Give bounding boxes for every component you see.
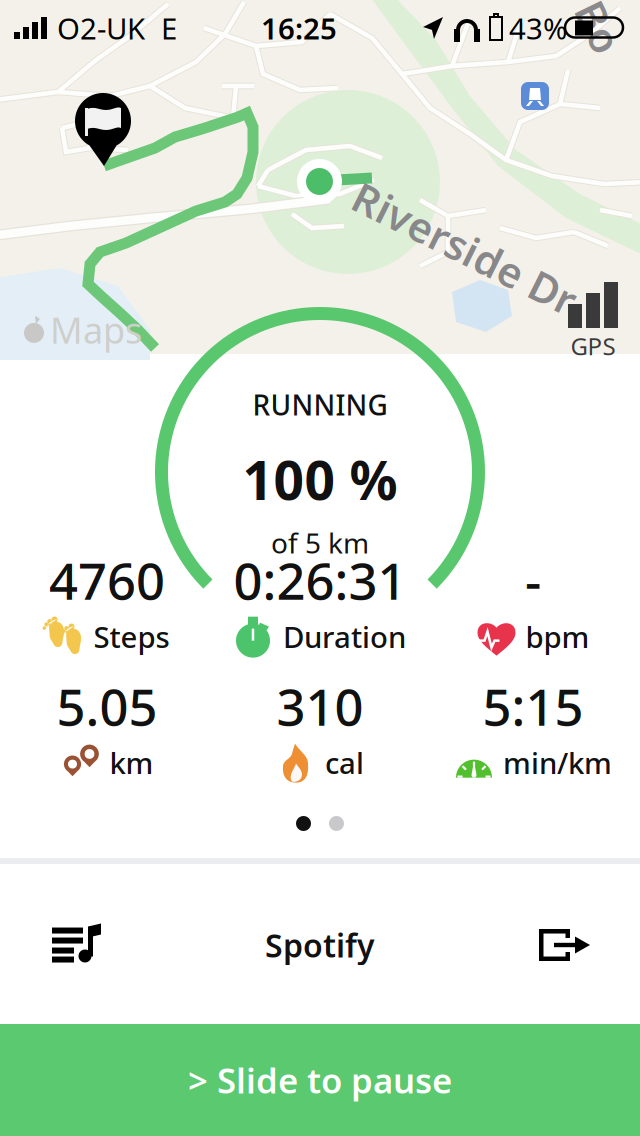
staticText: 43% (509, 8, 567, 47)
staticText: 16:25 (261, 8, 337, 47)
staticText: GPS (570, 330, 615, 362)
staticText: Riverside Dr (342, 221, 587, 275)
staticText: km (109, 743, 153, 782)
staticText: E (161, 8, 177, 47)
staticText: 5:15 (482, 672, 583, 740)
staticText: min/km (503, 743, 612, 782)
staticText: 100 % (242, 444, 397, 515)
staticText: Steps (93, 617, 169, 656)
staticText: 5.05 (56, 672, 157, 740)
staticText: of 5 km (271, 524, 369, 561)
button[interactable]: Exit workout (509, 897, 640, 993)
staticText: - (525, 546, 541, 614)
staticText: cal (325, 743, 364, 782)
staticText: Bo (572, 0, 625, 54)
staticText: Spotify (265, 924, 375, 966)
staticText: RUNNING (252, 386, 387, 423)
button[interactable]: > Slide to pause (0, 1024, 640, 1136)
staticText: 310 (276, 672, 363, 740)
button[interactable]: Playlist (0, 897, 131, 992)
staticText: > Slide to pause (188, 1057, 452, 1103)
staticText: bpm (525, 617, 589, 656)
staticText: Duration (283, 617, 406, 656)
staticText: Maps (50, 306, 142, 354)
staticText: 0:26:31 (233, 546, 406, 614)
staticText: 4760 (49, 546, 165, 614)
staticText: O2-UK (57, 8, 145, 47)
button[interactable]: Spotify (235, 892, 405, 998)
